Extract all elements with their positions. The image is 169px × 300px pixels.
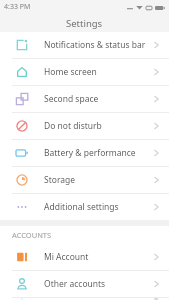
staticText: Do not disturb: [44, 120, 154, 132]
button[interactable]: Home screen: [0, 59, 169, 85]
staticText: Storage: [44, 174, 154, 186]
staticText: Additional settings: [44, 201, 154, 213]
staticText: Settings: [66, 17, 103, 30]
button[interactable]: Do not disturb: [0, 113, 169, 139]
other: Additional settings: [16, 201, 28, 213]
staticText: Mi Account: [44, 251, 154, 263]
button[interactable]: Storage: [0, 167, 169, 193]
button[interactable]: Battery: [0, 140, 169, 166]
other: Home screen: [16, 66, 28, 78]
staticText: Second space: [44, 93, 154, 105]
other: Notifications: [16, 39, 28, 51]
staticText: Home screen: [44, 66, 154, 78]
staticText: Notifications & status bar: [44, 39, 154, 51]
other: Do not disturb: [16, 120, 28, 132]
other: Other accounts: [16, 278, 28, 290]
staticText: Other accounts: [44, 278, 154, 290]
staticText: Battery & performance: [44, 147, 154, 159]
staticText: ACCOUNTS: [12, 230, 52, 240]
other: Second space: [16, 93, 28, 105]
button[interactable]: Sync: [0, 298, 169, 300]
button[interactable]: Other accounts: [0, 271, 169, 297]
button[interactable]: Second space: [0, 86, 169, 112]
other: Sync: [16, 298, 28, 300]
button[interactable]: Additional settings: [0, 194, 169, 220]
other: Battery: [16, 147, 28, 159]
other: Mi Account: [16, 251, 28, 263]
staticText: 4:33 PM: [4, 2, 31, 12]
button[interactable]: Notifications: [0, 32, 169, 58]
other: Storage: [16, 174, 28, 186]
button[interactable]: Mi Account: [0, 244, 169, 270]
